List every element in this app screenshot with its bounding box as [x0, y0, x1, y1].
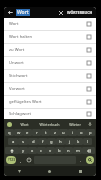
button[interactable]: n: [64, 147, 73, 154]
button[interactable]: Wort: [16, 7, 54, 18]
button[interactable]: geflügeltes Wort: [4, 96, 96, 108]
button[interactable]: ,: [17, 156, 25, 164]
button[interactable]: d: [28, 138, 38, 145]
button[interactable]: m: [73, 147, 82, 154]
button[interactable]: Back: [4, 166, 34, 176]
staticText: ?123: [8, 158, 15, 162]
staticText: Wort: [9, 21, 87, 27]
button[interactable]: y: [19, 147, 28, 154]
staticText: q: [8, 130, 11, 136]
button[interactable]: Recent apps: [65, 166, 96, 176]
button[interactable]: z: [50, 129, 59, 136]
staticText: Vorwort: [9, 86, 87, 92]
button[interactable]: i: [68, 129, 77, 136]
button[interactable]: h: [56, 138, 65, 145]
button[interactable]: j: [65, 138, 74, 145]
staticText: g: [50, 139, 53, 145]
staticText: Wort: [20, 122, 29, 127]
button[interactable]: Back: [4, 7, 16, 18]
button[interactable]: Backspace: [82, 147, 95, 154]
button[interactable]: Select: [87, 61, 91, 65]
button[interactable]: Shift: [5, 147, 19, 154]
staticText: u: [62, 130, 65, 136]
button[interactable]: b: [55, 147, 64, 154]
staticText: y: [22, 148, 25, 154]
button[interactable]: .: [77, 156, 85, 164]
staticText: Wörterbuch: [39, 122, 60, 127]
button[interactable]: Unwort: [4, 57, 96, 69]
staticText: r: [36, 130, 38, 136]
button[interactable]: q: [5, 129, 14, 136]
button[interactable]: f: [38, 138, 47, 145]
button[interactable]: Voice input: [87, 121, 93, 127]
button[interactable]: Wort: [12, 120, 37, 128]
button[interactable]: c: [37, 147, 46, 154]
button[interactable]: w: [14, 129, 23, 136]
button[interactable]: Select: [87, 35, 91, 39]
staticText: w: [17, 130, 21, 136]
staticText: c: [40, 148, 43, 154]
button[interactable]: Search: [86, 156, 94, 164]
button[interactable]: Select: [87, 112, 91, 116]
button[interactable]: g: [47, 138, 56, 145]
button[interactable]: Select: [87, 74, 91, 78]
staticText: a: [12, 139, 15, 145]
staticText: j: [69, 139, 71, 145]
button[interactable]: Select: [87, 48, 91, 52]
staticText: ,: [20, 158, 22, 163]
button[interactable]: k: [74, 138, 83, 145]
button[interactable]: v: [46, 147, 55, 154]
staticText: e: [26, 130, 29, 136]
button[interactable]: Select: [87, 100, 91, 104]
button[interactable]: Select: [87, 87, 91, 91]
staticText: v: [49, 148, 52, 154]
button[interactable]: Voice input settings: [7, 122, 12, 127]
staticText: m: [76, 148, 80, 154]
staticText: WÖRTERBUCH: [67, 10, 93, 15]
staticText: Wort: [17, 9, 29, 16]
button[interactable]: r: [32, 129, 41, 136]
staticText: Stichwort: [9, 73, 87, 79]
button[interactable]: e: [23, 129, 32, 136]
button[interactable]: Clear: [54, 7, 67, 18]
button[interactable]: Wörterbuch: [37, 120, 62, 128]
button[interactable]: Emoji: [25, 156, 33, 164]
staticText: Schlagwort: [9, 111, 87, 117]
staticText: Unwort: [9, 60, 87, 66]
staticText: b: [58, 148, 61, 154]
button[interactable]: t: [41, 129, 50, 136]
button[interactable]: Wörter: [62, 120, 87, 128]
staticText: l: [87, 139, 89, 145]
button[interactable]: Vorwort: [4, 83, 96, 95]
button[interactable]: Stichwort: [4, 70, 96, 82]
staticText: f: [42, 139, 44, 145]
button[interactable]: l: [83, 138, 92, 145]
button[interactable]: Wort halten: [4, 31, 96, 43]
button[interactable]: WÖRTERBUCH: [67, 7, 93, 18]
button[interactable]: Select: [87, 22, 91, 26]
staticText: .: [80, 158, 82, 163]
button[interactable]: ?123: [6, 156, 16, 164]
staticText: s: [22, 139, 25, 145]
staticText: i: [72, 130, 74, 136]
button[interactable]: zu Wort: [4, 44, 96, 56]
staticText: o: [80, 130, 83, 136]
button[interactable]: s: [18, 138, 28, 145]
staticText: t: [45, 130, 47, 136]
staticText: Wörter: [69, 122, 81, 127]
button[interactable]: Wort: [4, 18, 96, 30]
staticText: d: [32, 139, 35, 145]
button[interactable]: Schlagwort: [4, 109, 96, 119]
button[interactable]: x: [28, 147, 37, 154]
button[interactable]: u: [59, 129, 68, 136]
button[interactable]: a: [8, 138, 18, 145]
button[interactable]: p: [86, 129, 95, 136]
staticText: h: [59, 139, 62, 145]
button[interactable]: Home: [34, 166, 65, 176]
staticText: k: [77, 139, 80, 145]
staticText: z: [54, 130, 56, 136]
button[interactable]: o: [77, 129, 86, 136]
staticText: Wort halten: [9, 34, 87, 40]
staticText: x: [31, 148, 34, 154]
